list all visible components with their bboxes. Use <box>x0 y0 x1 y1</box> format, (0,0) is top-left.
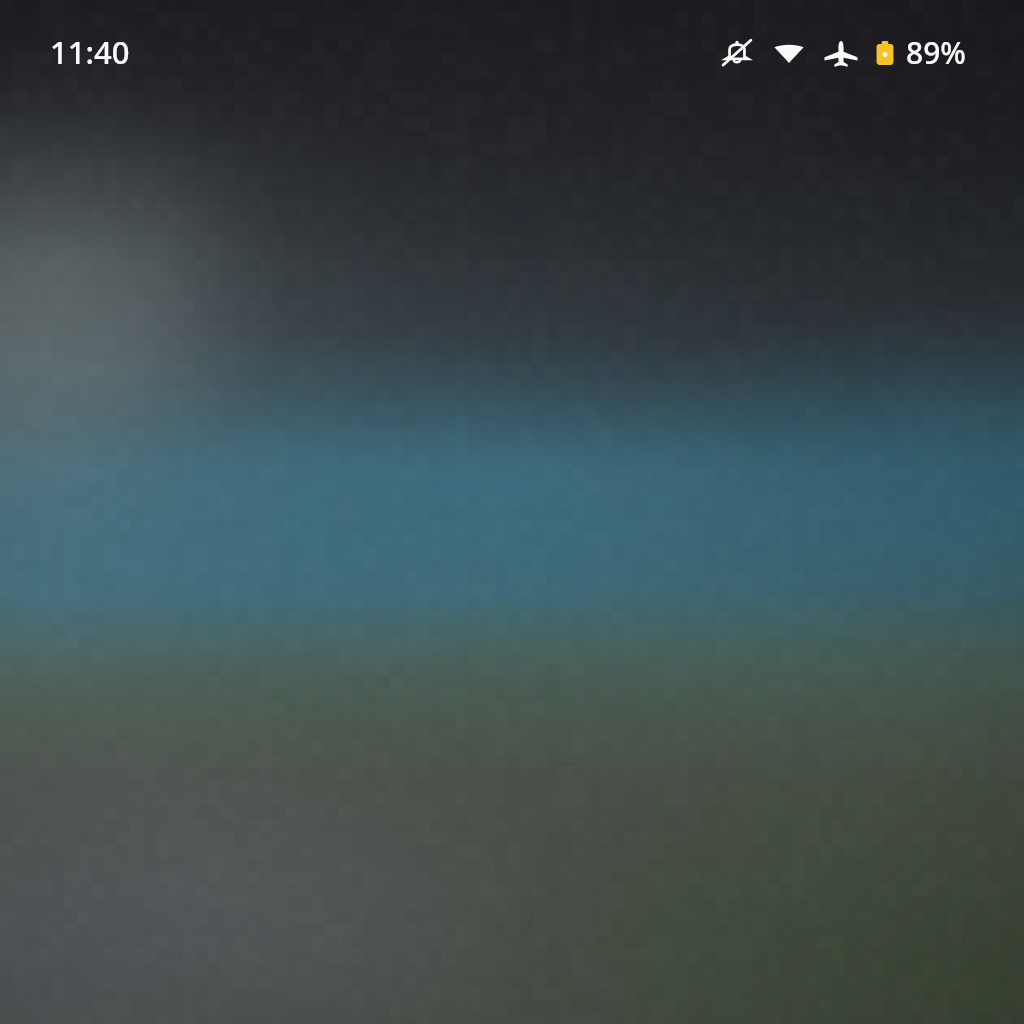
other: Ringer silent <box>718 34 756 72</box>
staticText: 89% <box>906 32 966 73</box>
other: Airplane mode on <box>822 34 860 72</box>
other: Wi-Fi full signal <box>770 34 808 72</box>
staticText: 11:40 <box>50 31 130 73</box>
other: Battery saver on, 89 percent <box>872 34 898 72</box>
